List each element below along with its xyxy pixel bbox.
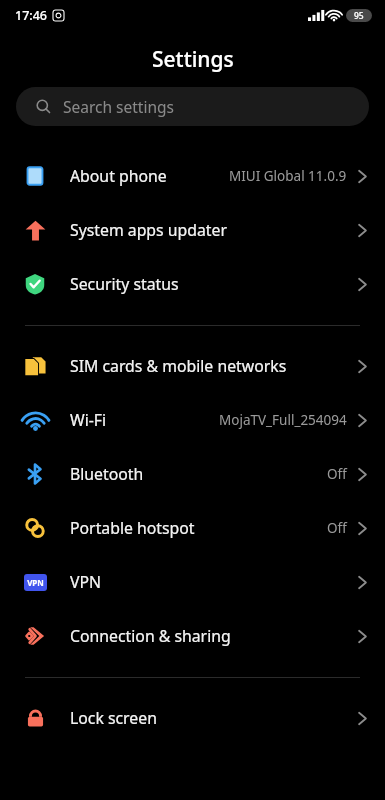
staticText: VPN <box>70 571 102 593</box>
staticText: VPN <box>27 577 44 588</box>
button[interactable]: System apps updater <box>0 203 385 257</box>
staticText: SIM cards & mobile networks <box>70 355 287 377</box>
staticText: 95 <box>354 10 364 22</box>
button[interactable]: About phone <box>0 149 385 203</box>
button[interactable]: SIM cards & mobile networks <box>0 339 385 393</box>
staticText: Portable hotspot <box>70 517 195 539</box>
staticText: MojaTV_Full_254094 <box>219 411 347 429</box>
staticText: Lock screen <box>70 707 157 729</box>
button[interactable]: Connection & sharing <box>0 609 385 663</box>
staticText: 17:46 <box>15 7 48 24</box>
staticText: Wi-Fi <box>70 409 107 431</box>
staticText: Connection & sharing <box>70 625 231 647</box>
staticText: MIUI Global 11.0.9 <box>229 167 347 185</box>
staticText: Off <box>327 519 347 537</box>
staticText: Settings <box>152 45 234 74</box>
button[interactable]: Search settings <box>16 87 369 126</box>
button[interactable]: Wi-Fi <box>0 393 385 447</box>
button[interactable]: Portable hotspot <box>0 501 385 555</box>
staticText: About phone <box>70 165 167 187</box>
staticText: Search settings <box>63 96 174 117</box>
staticText: Security status <box>70 273 179 295</box>
button[interactable]: VPN <box>0 555 385 609</box>
button[interactable]: Bluetooth <box>0 447 385 501</box>
button[interactable]: Security status <box>0 257 385 311</box>
staticText: Bluetooth <box>70 463 144 485</box>
staticText: System apps updater <box>70 219 227 241</box>
button[interactable]: Lock screen <box>0 691 385 745</box>
staticText: Off <box>327 465 347 483</box>
